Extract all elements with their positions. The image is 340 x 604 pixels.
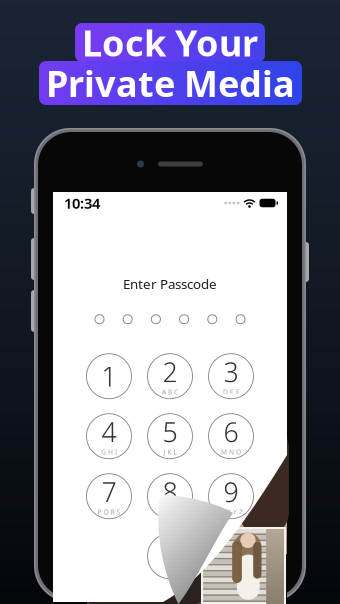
button[interactable]: 2 [147,354,192,399]
staticText: 1 [101,358,116,394]
staticText: 5 [162,414,177,449]
button[interactable]: 0 [147,534,192,579]
staticText: M N O [221,447,241,456]
staticText: W X Y Z [219,507,243,516]
staticText: G H I [101,447,117,456]
staticText: J K L [163,447,176,456]
staticText: Lock Your [82,19,258,66]
staticText: T U V [161,507,178,516]
staticText: 10:34 [64,193,100,213]
button[interactable]: 9 [208,474,253,519]
staticText: 2 [162,354,177,389]
staticText: Enter Passcode [123,275,217,293]
button[interactable]: 3 [208,354,253,399]
staticText: Private Media [46,59,295,107]
button[interactable]: 7 [86,474,131,519]
staticText: 7 [101,474,116,509]
button[interactable]: 5 [147,414,192,459]
staticText: D E F [223,387,239,396]
staticText: 9 [223,474,238,509]
button[interactable]: 8 [147,474,192,519]
staticText: 4 [101,414,116,449]
button[interactable]: 6 [208,414,253,459]
staticText: P Q R S [97,507,120,516]
button[interactable]: 1 [86,354,131,399]
staticText: 0 [162,538,177,574]
staticText: A B C [162,387,178,396]
staticText: 6 [223,414,238,449]
staticText: 3 [223,354,238,389]
staticText: 8 [162,474,177,509]
button[interactable]: 4 [86,414,131,459]
